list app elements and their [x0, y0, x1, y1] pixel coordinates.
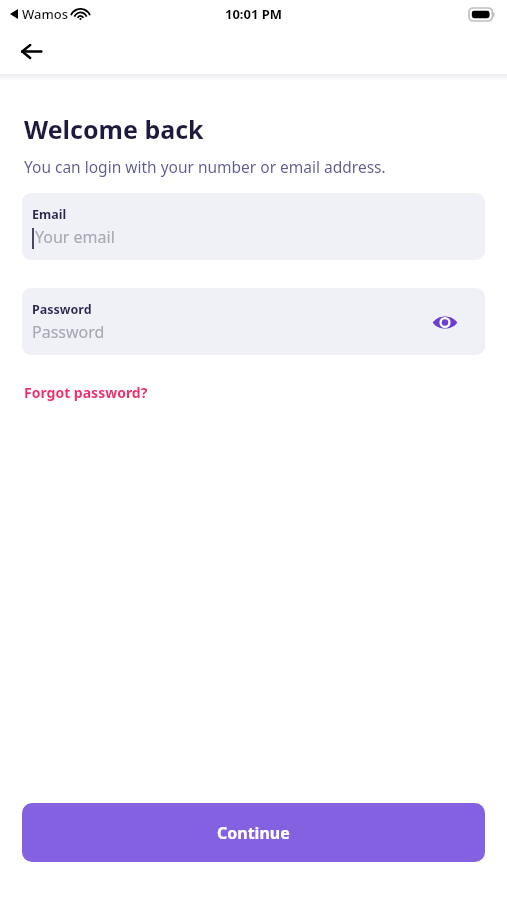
- button[interactable]: Back: [12, 32, 50, 70]
- staticText: 10:01 PM: [225, 5, 283, 23]
- button[interactable]: Forgot password?: [22, 381, 150, 404]
- staticText: Welcome back: [24, 112, 204, 146]
- staticText: Forgot password?: [24, 383, 148, 402]
- staticText: You can login with your number or email …: [24, 156, 386, 177]
- button[interactable]: Password: [22, 288, 485, 355]
- staticText: Continue: [217, 822, 290, 844]
- staticText: Password: [32, 321, 105, 343]
- staticText: Email: [32, 206, 67, 223]
- staticText: Your email: [35, 226, 115, 248]
- staticText: Password: [32, 301, 92, 318]
- button[interactable]: Email: [22, 193, 485, 260]
- button[interactable]: Continue: [22, 803, 485, 862]
- staticText: Wamos: [22, 5, 68, 23]
- button[interactable]: Show password: [427, 304, 463, 340]
